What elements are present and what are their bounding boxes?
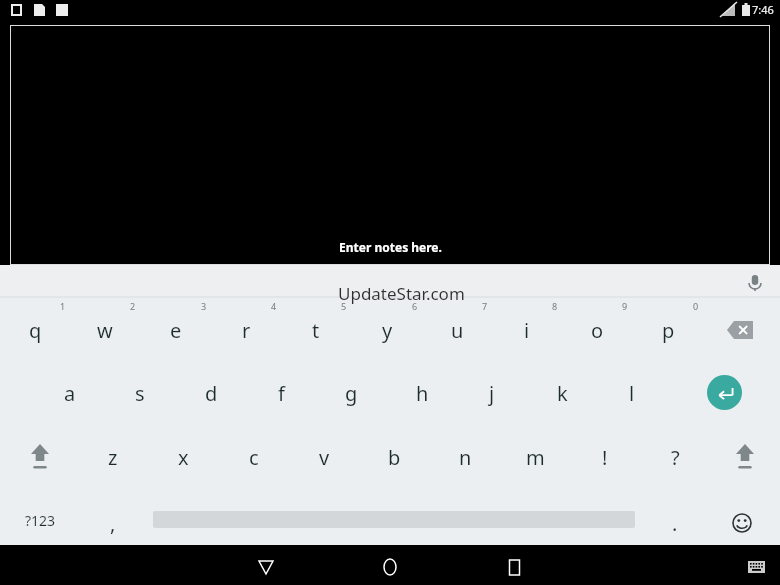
button[interactable]: . [645, 501, 705, 545]
button[interactable]: , [83, 501, 143, 545]
staticText: 5 [341, 300, 347, 312]
staticText: 3 [201, 300, 207, 312]
button[interactable]: ! [575, 435, 635, 479]
staticText: w [97, 317, 113, 344]
staticText: s [135, 380, 145, 407]
button[interactable]: n [435, 435, 495, 479]
staticText: 8 [552, 300, 558, 312]
staticText: m [526, 444, 545, 471]
button[interactable]: o [567, 308, 627, 352]
staticText: ! [602, 444, 608, 471]
button[interactable]: Switch keyboard [745, 558, 767, 576]
staticText: t [312, 317, 320, 344]
staticText: 0 [693, 300, 699, 312]
button[interactable]: Recent apps [496, 556, 532, 578]
button[interactable]: Backspace [712, 310, 768, 350]
staticText: ?123 [25, 511, 56, 530]
button[interactable]: c [224, 435, 284, 479]
staticText: 7 [482, 300, 488, 312]
button[interactable]: Voice input [744, 271, 766, 293]
button[interactable]: Back [248, 556, 284, 578]
staticText: Enter notes here. [339, 239, 442, 255]
staticText: b [388, 444, 401, 471]
button[interactable]: Shift [717, 435, 773, 479]
staticText: n [459, 444, 472, 471]
staticText: ? [671, 444, 680, 471]
staticText: , [110, 510, 116, 537]
staticText: UpdateStar.com [338, 282, 465, 305]
staticText: a [64, 380, 76, 407]
button[interactable]: h [392, 371, 452, 415]
button[interactable]: q [5, 308, 65, 352]
button[interactable]: d [181, 371, 241, 415]
button[interactable]: g [321, 371, 381, 415]
button[interactable]: e [146, 308, 206, 352]
button[interactable]: r [216, 308, 276, 352]
button[interactable]: z [83, 435, 143, 479]
staticText: r [242, 317, 251, 344]
button[interactable]: x [153, 435, 213, 479]
button[interactable]: i [497, 308, 557, 352]
staticText: 6 [412, 300, 418, 312]
button[interactable]: p [638, 308, 698, 352]
button[interactable]: b [364, 435, 424, 479]
staticText: x [178, 444, 189, 471]
staticText: 4 [271, 300, 277, 312]
button[interactable]: t [286, 308, 346, 352]
staticText: 1 [60, 300, 66, 312]
staticText: 7:46 [752, 2, 774, 17]
button[interactable]: w [75, 308, 135, 352]
button[interactable]: ?123 [8, 500, 72, 540]
button[interactable]: Home [372, 556, 408, 578]
button[interactable]: Shift [12, 435, 68, 479]
button[interactable]: s [110, 371, 170, 415]
staticText: k [557, 380, 568, 407]
staticText: u [451, 317, 464, 344]
button[interactable]: Enter [707, 375, 742, 410]
staticText: v [319, 444, 330, 471]
button[interactable]: a [40, 371, 100, 415]
button[interactable]: j [462, 371, 522, 415]
button[interactable]: u [427, 308, 487, 352]
staticText: h [416, 380, 429, 407]
staticText: f [278, 380, 285, 407]
button[interactable]: k [532, 371, 592, 415]
staticText: d [205, 380, 218, 407]
button[interactable]: f [251, 371, 311, 415]
staticText: c [249, 444, 259, 471]
button[interactable]: Enter notes here. [10, 25, 770, 265]
staticText: o [591, 317, 604, 344]
staticText: y [382, 317, 393, 344]
staticText: q [29, 317, 42, 344]
button[interactable]: ? [645, 435, 705, 479]
staticText: j [489, 380, 495, 407]
button[interactable]: v [294, 435, 354, 479]
staticText: . [672, 510, 678, 537]
staticText: i [524, 317, 530, 344]
staticText: l [629, 380, 635, 407]
staticText: p [662, 317, 675, 344]
staticText: 9 [622, 300, 628, 312]
staticText: e [170, 317, 182, 344]
button[interactable]: y [357, 308, 417, 352]
button[interactable]: m [505, 435, 565, 479]
staticText: z [108, 444, 118, 471]
button[interactable]: Emoji [722, 503, 762, 543]
button[interactable]: l [602, 371, 662, 415]
staticText: g [345, 380, 358, 407]
staticText: 2 [130, 300, 136, 312]
